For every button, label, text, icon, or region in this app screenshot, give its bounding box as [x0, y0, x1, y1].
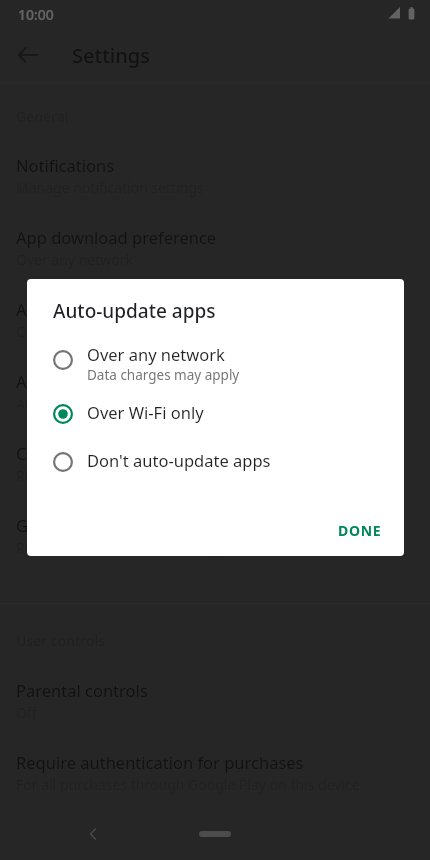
staticText: Over Wi-Fi only [87, 401, 204, 423]
staticText: Data charges may apply [87, 366, 240, 384]
button[interactable]: DONE [324, 511, 396, 550]
staticText: Auto-update apps [16, 298, 155, 320]
staticText: Don't auto-update apps [87, 449, 271, 471]
button[interactable]: Require authentication for purchases [0, 751, 430, 794]
button[interactable]: General [0, 514, 430, 557]
staticText: Auto-update apps [53, 298, 216, 324]
staticText: Clear local search history [16, 442, 210, 464]
button[interactable]: Auto-update apps [0, 298, 430, 341]
button[interactable]: Clear local search history [0, 442, 430, 485]
button[interactable]: Auto-play videos [0, 370, 430, 413]
staticText: DONE [338, 521, 382, 540]
staticText: General [16, 514, 77, 536]
button[interactable]: Don't auto-update apps [27, 449, 404, 497]
staticText: Settings [72, 42, 150, 69]
staticText: Require authentication for purchases [16, 751, 304, 773]
button[interactable]: Over Wi-Fi only [27, 401, 404, 449]
staticText: 10:00 [18, 5, 54, 24]
staticText: App download preference [16, 226, 217, 248]
staticText: Recommendations, remove apps from wish l… [16, 538, 331, 557]
button[interactable]: Over any network [27, 343, 404, 401]
staticText: Over any network [87, 343, 225, 365]
staticText: Parental controls [16, 679, 148, 701]
button[interactable]: Back [76, 816, 112, 852]
staticText: Over Wi-Fi only [16, 322, 115, 341]
staticText: Notifications [16, 154, 115, 176]
button[interactable]: App download preference [0, 226, 430, 269]
staticText: Remove searches from this device [16, 466, 239, 485]
staticText: Auto-play videos [16, 370, 145, 392]
staticText: Always [16, 394, 62, 413]
button[interactable]: Home [189, 819, 241, 849]
